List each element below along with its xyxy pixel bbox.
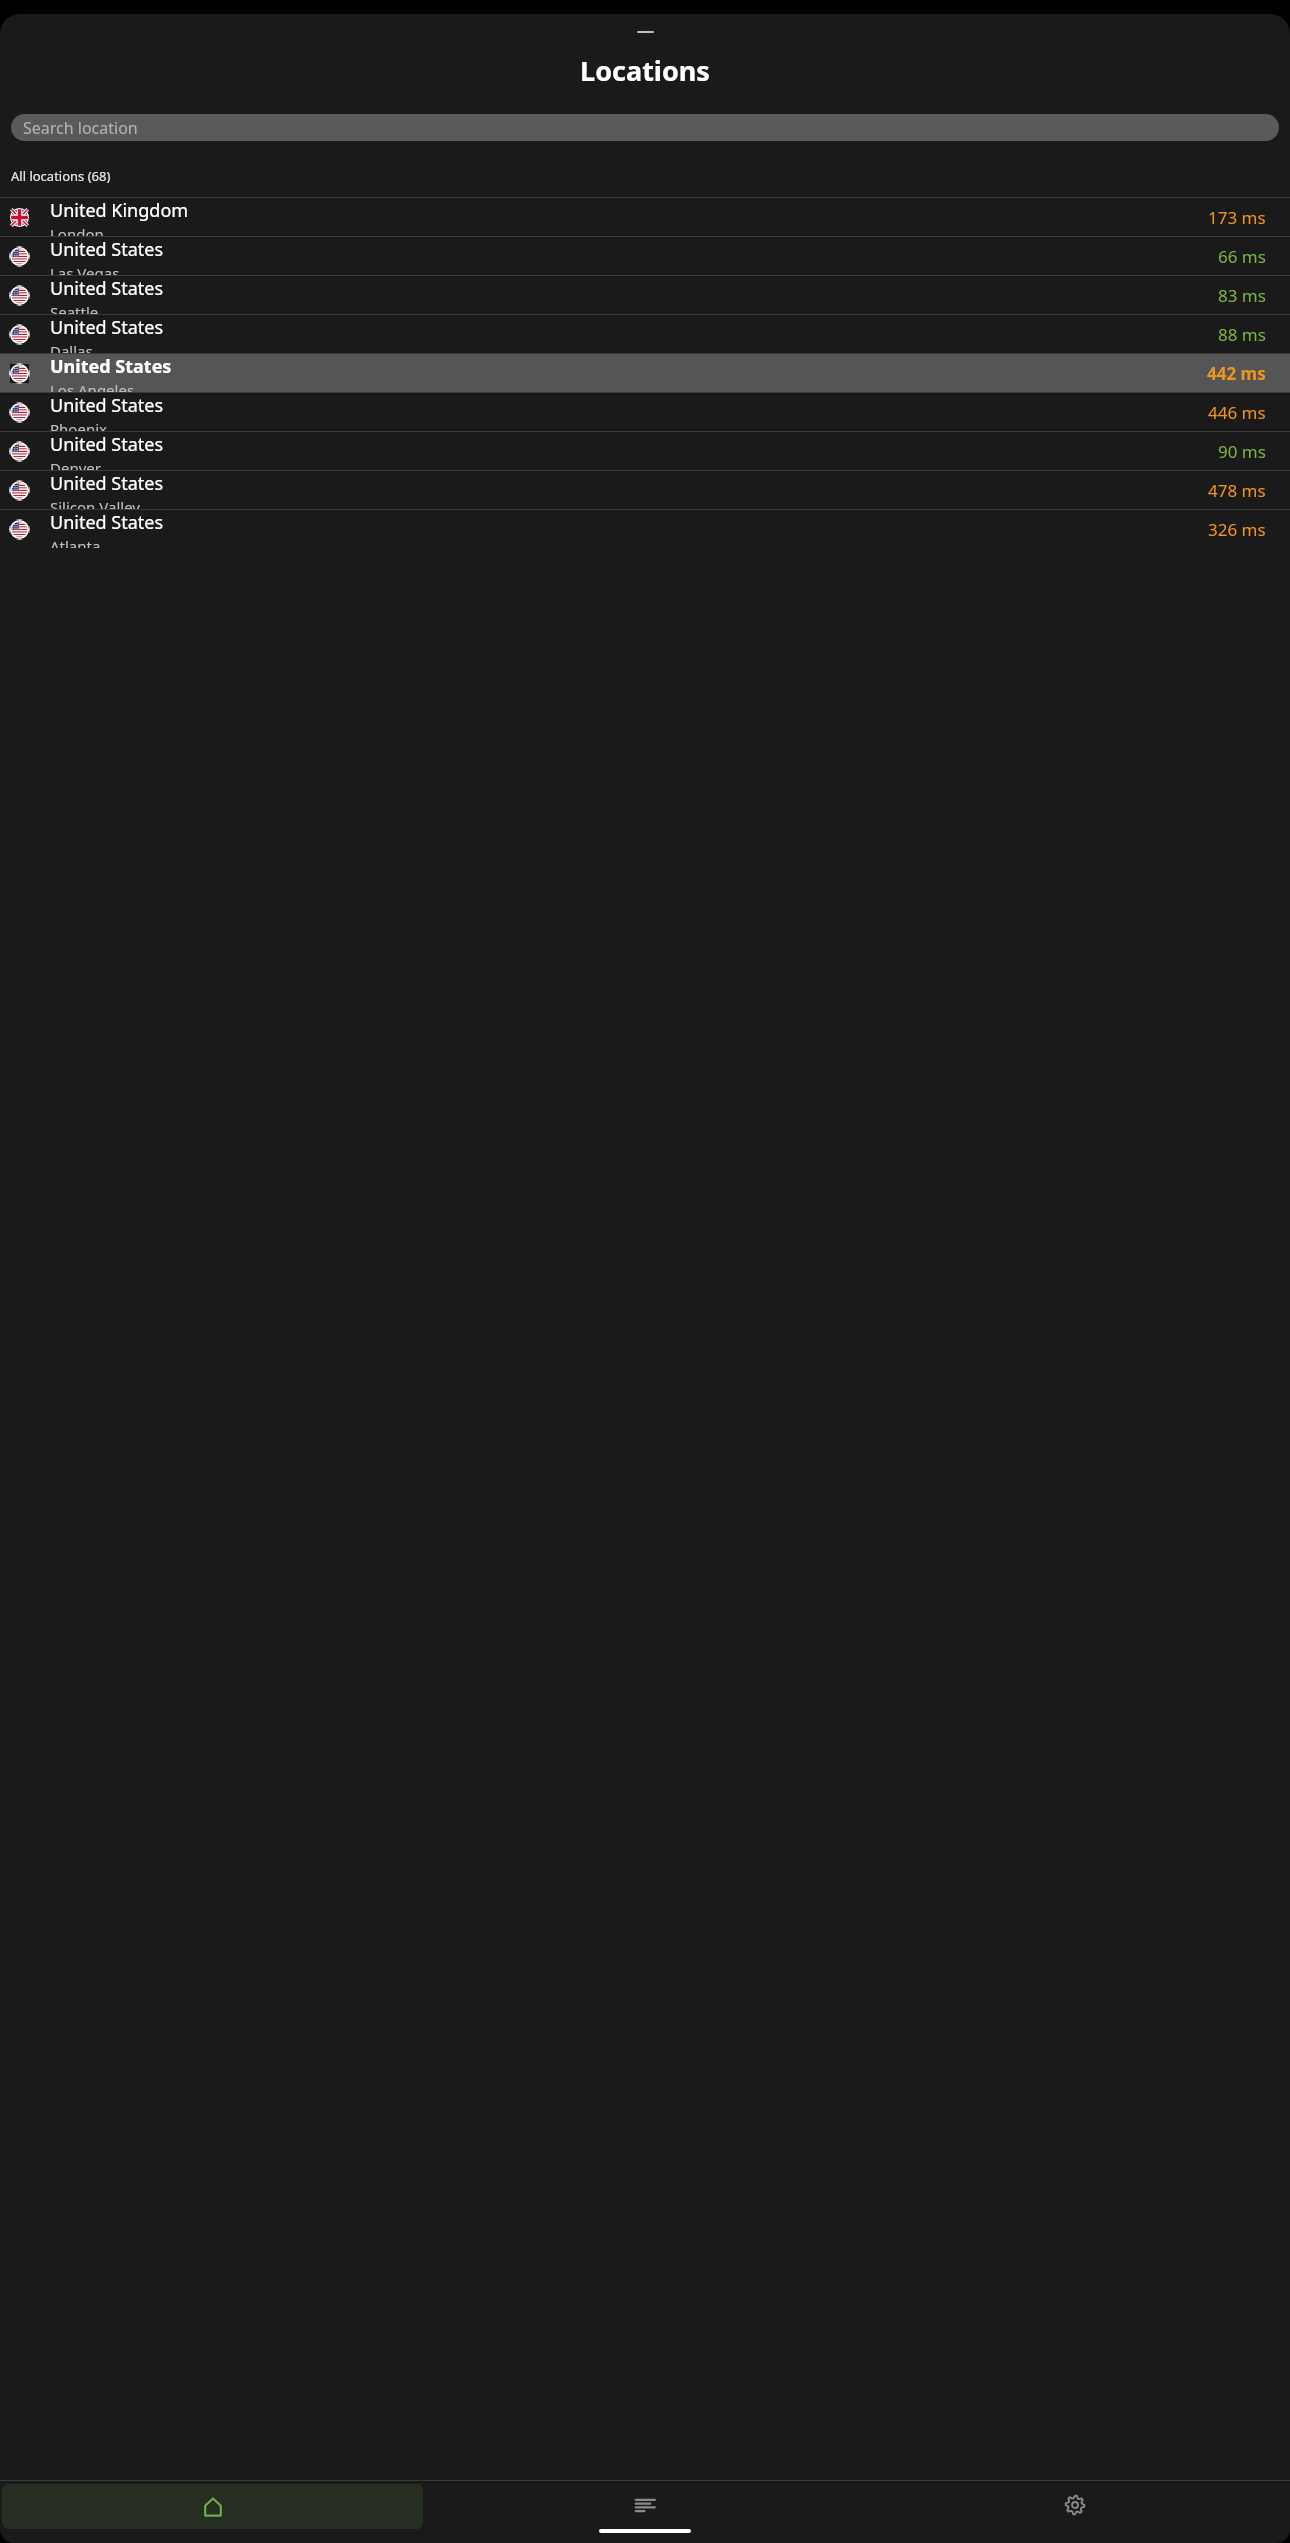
staticText: United States	[50, 393, 164, 418]
staticText: 478 ms	[1208, 479, 1266, 502]
staticText: United States	[50, 354, 172, 379]
staticText: United States	[50, 471, 164, 496]
button[interactable]: Search location	[11, 114, 1279, 141]
staticText: United States	[50, 315, 164, 340]
staticText: Locations	[0, 52, 1290, 89]
staticText: Denver	[50, 458, 101, 470]
staticText: Los Angeles	[50, 380, 135, 392]
staticText: Phoenix	[50, 419, 107, 431]
staticText: Seattle	[50, 302, 99, 314]
staticText: Dallas	[50, 341, 93, 353]
staticText: Search location	[23, 117, 138, 139]
button[interactable]: Servers list	[430, 2481, 860, 2529]
staticText: Las Vegas	[50, 263, 120, 275]
button[interactable]: Settings	[860, 2481, 1290, 2529]
staticText: United Kingdom	[50, 198, 189, 223]
staticText: 326 ms	[1208, 518, 1266, 541]
button[interactable]: United States	[0, 471, 1290, 509]
staticText: All locations (68)	[11, 167, 111, 185]
staticText: 90 ms	[1218, 440, 1266, 463]
staticText: 83 ms	[1218, 284, 1266, 307]
staticText: London	[50, 224, 104, 236]
button[interactable]: United States	[0, 393, 1290, 431]
staticText: United States	[50, 510, 164, 535]
staticText: 446 ms	[1208, 401, 1266, 424]
button[interactable]: United States	[0, 276, 1290, 314]
staticText: Silicon Valley	[50, 497, 140, 509]
button[interactable]: Home	[2, 2484, 423, 2529]
staticText: 442 ms	[1207, 362, 1266, 385]
staticText: United States	[50, 237, 164, 262]
staticText: United States	[50, 276, 164, 301]
button[interactable]: United States	[0, 315, 1290, 353]
staticText: United States	[50, 432, 164, 457]
button[interactable]: United States	[0, 432, 1290, 470]
button[interactable]: United States	[0, 510, 1290, 548]
button[interactable]: United States	[0, 237, 1290, 275]
staticText: Atlanta	[50, 536, 101, 548]
staticText: 88 ms	[1218, 323, 1266, 346]
button[interactable]: United Kingdom	[0, 198, 1290, 236]
staticText: 173 ms	[1208, 206, 1266, 229]
staticText: 66 ms	[1218, 245, 1266, 268]
button[interactable]: United States	[0, 354, 1290, 392]
